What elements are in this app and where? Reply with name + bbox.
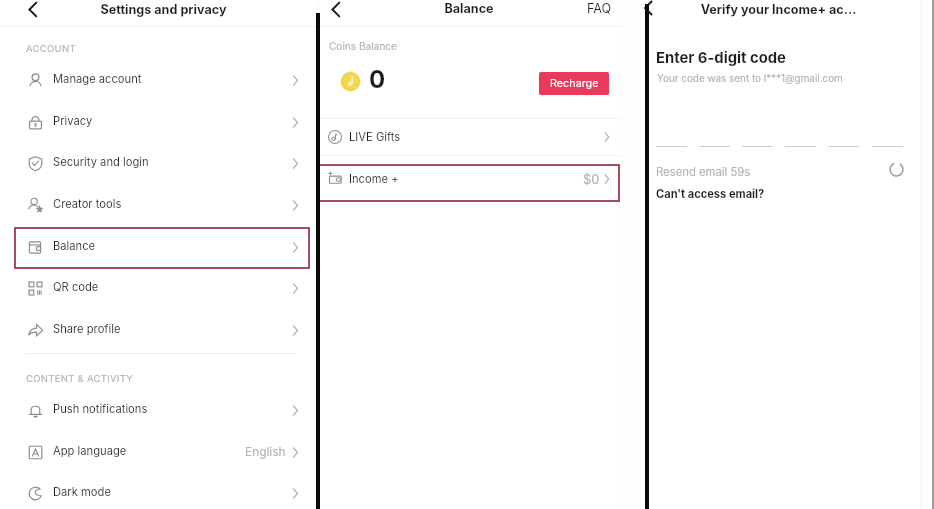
- button[interactable]: Recharge: [539, 72, 609, 95]
- button[interactable]: Push notifications: [0, 388, 317, 429]
- staticText: Income +: [349, 172, 399, 186]
- staticText: Share profile: [53, 322, 121, 336]
- button[interactable]: Balance: [0, 225, 317, 266]
- staticText: Dark mode: [53, 485, 111, 499]
- button[interactable]: Back: [24, 1, 40, 17]
- staticText: FAQ: [587, 1, 612, 16]
- staticText: Coins Balance: [329, 40, 397, 52]
- staticText: $0: [583, 171, 600, 187]
- button[interactable]: Share profile: [0, 308, 317, 349]
- staticText: Security and login: [53, 155, 149, 169]
- button[interactable]: Income +: [320, 160, 622, 197]
- button[interactable]: Creator tools: [0, 183, 317, 224]
- button[interactable]: Privacy: [0, 100, 317, 141]
- staticText: English: [245, 444, 286, 458]
- staticText: Push notifications: [53, 402, 148, 416]
- staticText: Can't access email?: [656, 187, 765, 200]
- staticText: 0: [369, 65, 386, 94]
- staticText: App language: [53, 444, 127, 458]
- staticText: ACCOUNT: [26, 43, 76, 54]
- staticText: Manage account: [53, 72, 142, 86]
- button[interactable]: Back: [641, 1, 655, 15]
- staticText: Resend email 59s: [656, 165, 751, 179]
- button[interactable]: LIVE Gifts: [320, 119, 622, 155]
- button[interactable]: Manage account: [0, 58, 317, 99]
- button[interactable]: Back: [327, 1, 343, 17]
- staticText: Creator tools: [53, 197, 122, 211]
- staticText: Balance: [320, 1, 618, 16]
- staticText: Your code was sent to l***1@gmail.com: [657, 72, 843, 84]
- staticText: Recharge: [550, 77, 599, 90]
- staticText: Enter 6-digit code: [656, 49, 786, 67]
- staticText: Verify your Income+ ac...: [648, 2, 909, 17]
- staticText: QR code: [53, 280, 99, 294]
- staticText: Privacy: [53, 114, 93, 128]
- button[interactable]: QR code: [0, 266, 317, 307]
- staticText: Settings and privacy: [10, 2, 317, 17]
- staticText: LIVE Gifts: [349, 130, 401, 144]
- button[interactable]: Refresh: [887, 160, 906, 179]
- button[interactable]: App language: [0, 430, 317, 471]
- button[interactable]: FAQ: [584, 0, 614, 16]
- button[interactable]: Dark mode: [0, 471, 317, 509]
- staticText: CONTENT & ACTIVITY: [26, 373, 134, 384]
- staticText: Balance: [53, 239, 96, 253]
- button[interactable]: Security and login: [0, 141, 317, 182]
